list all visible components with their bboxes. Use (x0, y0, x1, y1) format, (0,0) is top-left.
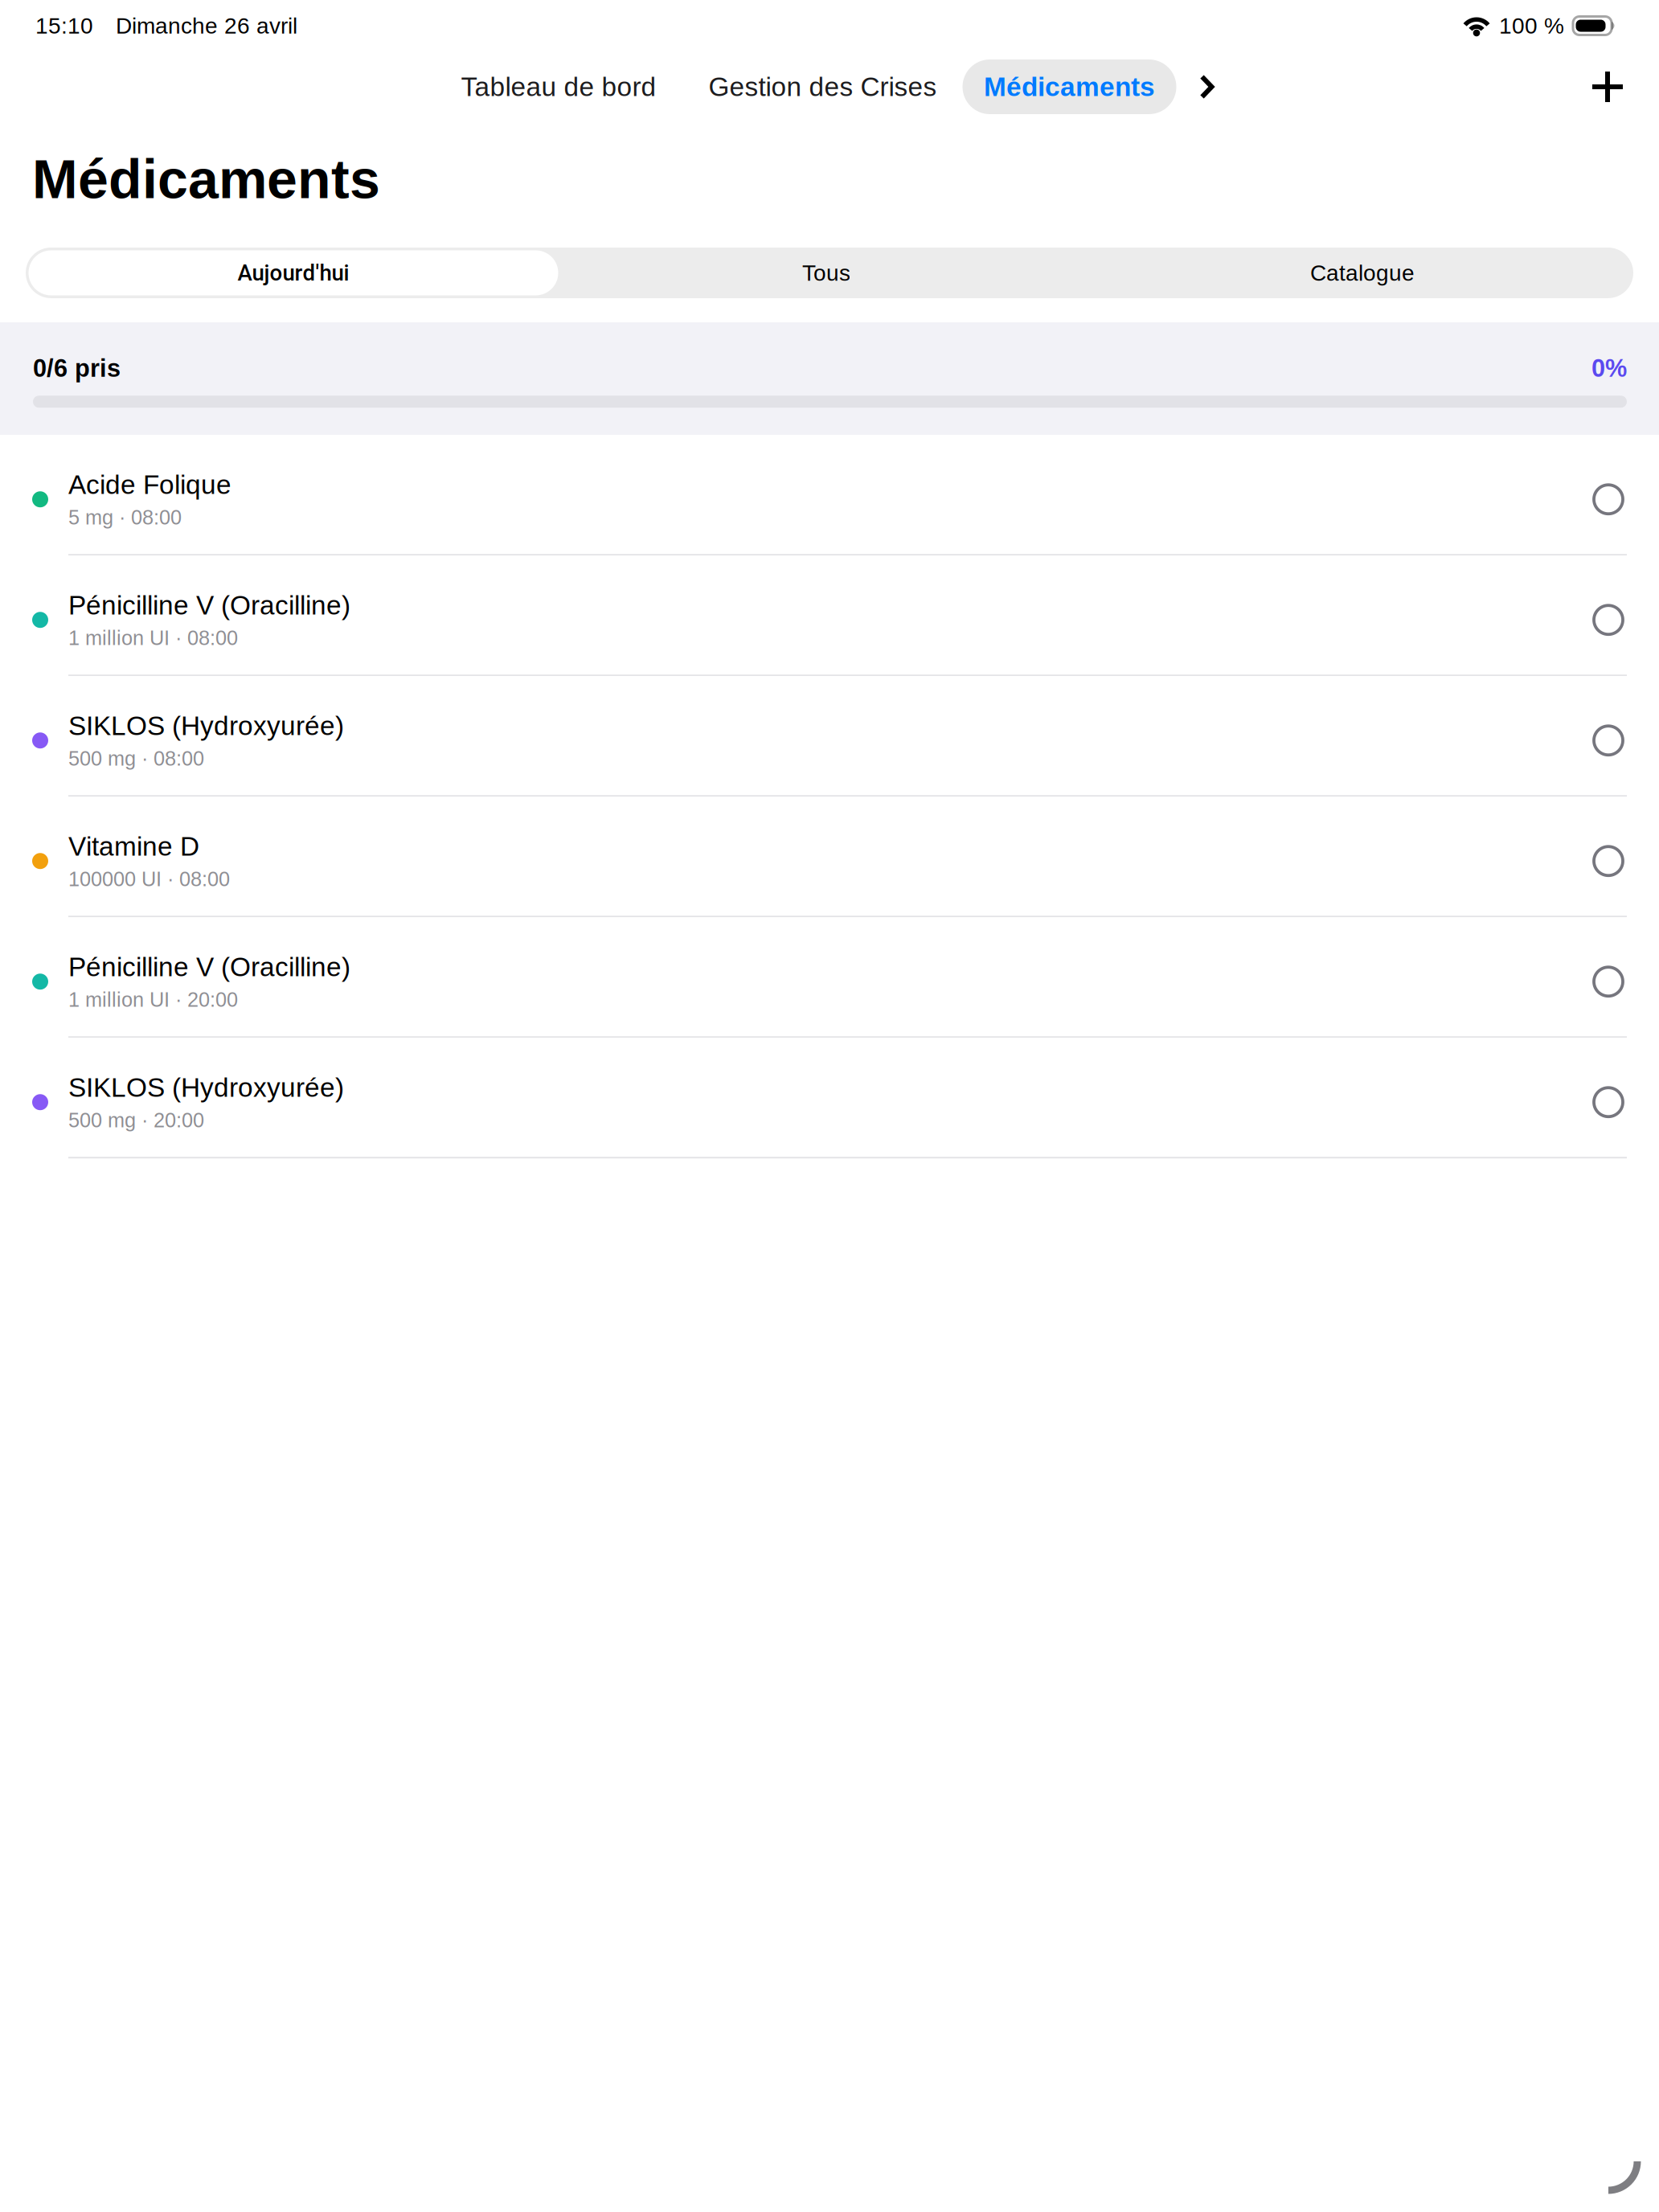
button[interactable]: SIKLOS (Hydroxyurée) (0, 676, 1659, 797)
button[interactable]: Afficher plus d'onglets (1176, 53, 1239, 121)
staticText: 15:10 (35, 13, 93, 38)
staticText: Aujourd'hui (238, 260, 349, 286)
staticText: Gestion des Crises (709, 72, 937, 102)
staticText: SIKLOS (Hydroxyurée) (68, 1072, 344, 1102)
staticText: 500 mg · 20:00 (68, 1109, 204, 1132)
button[interactable]: Vitamine D (0, 797, 1659, 917)
staticText: Tous (802, 260, 850, 285)
staticText: 1 million UI · 20:00 (68, 988, 238, 1011)
button[interactable]: Catalogue (1094, 250, 1630, 295)
button[interactable]: Tous (558, 250, 1094, 295)
staticText: Tableau de bord (461, 72, 656, 102)
button[interactable]: Ajouter un médicament (1572, 51, 1643, 122)
button[interactable]: Médicaments (963, 53, 1176, 121)
staticText: SIKLOS (Hydroxyurée) (68, 711, 344, 741)
staticText: Pénicilline V (Oracilline) (68, 590, 350, 620)
staticText: 1 million UI · 08:00 (68, 627, 238, 649)
staticText: Médicaments (984, 72, 1155, 102)
button[interactable]: Pénicilline V (Oracilline) (0, 917, 1659, 1038)
staticText: Médicaments (32, 149, 380, 210)
staticText: Pénicilline V (Oracilline) (68, 952, 350, 982)
button[interactable]: Pénicilline V (Oracilline) (0, 556, 1659, 676)
staticText: Catalogue (1310, 260, 1415, 285)
button[interactable]: Aujourd'hui (29, 250, 558, 295)
staticText: 500 mg · 08:00 (68, 747, 204, 770)
button[interactable]: Gestion des Crises (683, 53, 963, 121)
button[interactable]: Tableau de bord (420, 53, 683, 121)
staticText: 100000 UI · 08:00 (68, 868, 230, 890)
staticText: Vitamine D (68, 831, 199, 861)
staticText: 100 % (1499, 13, 1564, 38)
staticText: 5 mg · 08:00 (68, 506, 182, 529)
staticText: Dimanche 26 avril (116, 13, 297, 38)
button[interactable]: SIKLOS (Hydroxyurée) (0, 1038, 1659, 1158)
staticText: Acide Folique (68, 470, 231, 499)
staticText: 0/6 pris (33, 354, 121, 382)
staticText: 0% (1591, 354, 1627, 382)
button[interactable]: Acide Folique (0, 435, 1659, 556)
